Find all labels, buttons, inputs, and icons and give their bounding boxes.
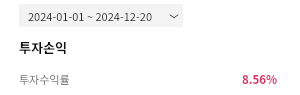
staticText: 투자수익률 xyxy=(19,71,70,87)
staticText: 2024-01-01 ~ 2024-12-20 xyxy=(28,8,152,24)
button[interactable]: 투자수익률 xyxy=(0,70,300,88)
staticText: 8.56% xyxy=(242,71,278,88)
staticText: 투자손익 xyxy=(19,38,67,57)
other: Change date range xyxy=(168,10,180,22)
button[interactable]: 2024-01-01 ~ 2024-12-20 xyxy=(19,4,183,27)
